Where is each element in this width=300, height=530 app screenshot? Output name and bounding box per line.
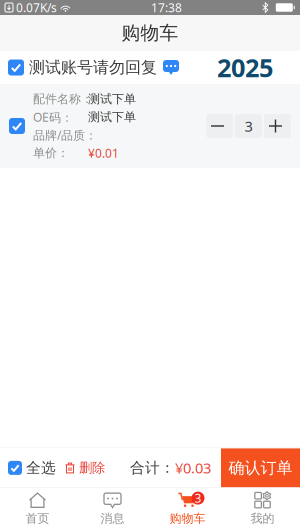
staticText: 购物车 xyxy=(169,511,205,526)
staticText: 3 xyxy=(194,490,201,506)
button[interactable]: Contact seller xyxy=(157,60,179,75)
staticText: 删除 xyxy=(79,460,105,476)
staticText: 我的 xyxy=(250,511,274,526)
staticText: OE码： xyxy=(33,109,73,125)
staticText: 测试下单 xyxy=(88,92,136,106)
staticText: 首页 xyxy=(25,511,49,526)
button[interactable]: Decrease quantity xyxy=(206,114,233,138)
button[interactable]: 删除 xyxy=(56,448,105,487)
button[interactable]: 测试账号请勿回复 xyxy=(8,58,157,77)
staticText: 全选 xyxy=(26,459,56,477)
staticText: ¥0.01 xyxy=(88,145,119,161)
staticText: 测试下单 xyxy=(88,110,136,124)
button[interactable]: 我的 xyxy=(225,488,300,530)
button[interactable]: 确认订单 xyxy=(221,448,300,487)
staticText: 消息 xyxy=(100,511,124,526)
button[interactable]: 消息 xyxy=(75,488,150,530)
staticText: 2025 xyxy=(217,51,273,84)
staticText: 品牌/品质： xyxy=(33,127,97,143)
button[interactable]: 首页 xyxy=(0,488,75,530)
staticText: 0.07K/s xyxy=(16,0,57,15)
staticText: 配件名称： xyxy=(33,92,93,106)
staticText: 合计： xyxy=(130,459,175,477)
staticText: 测试账号请勿回复 xyxy=(29,58,157,77)
staticText: 单价： xyxy=(33,146,69,160)
staticText: 购物车 xyxy=(121,21,178,44)
staticText: ¥0.03 xyxy=(175,458,211,478)
staticText: 3 xyxy=(244,116,252,136)
staticText: 确认订单 xyxy=(228,458,292,478)
button[interactable]: 全选 xyxy=(0,448,56,487)
button[interactable]: 3 xyxy=(150,488,225,530)
button[interactable]: Increase quantity xyxy=(264,114,291,138)
staticText: 17:38 xyxy=(151,0,182,15)
